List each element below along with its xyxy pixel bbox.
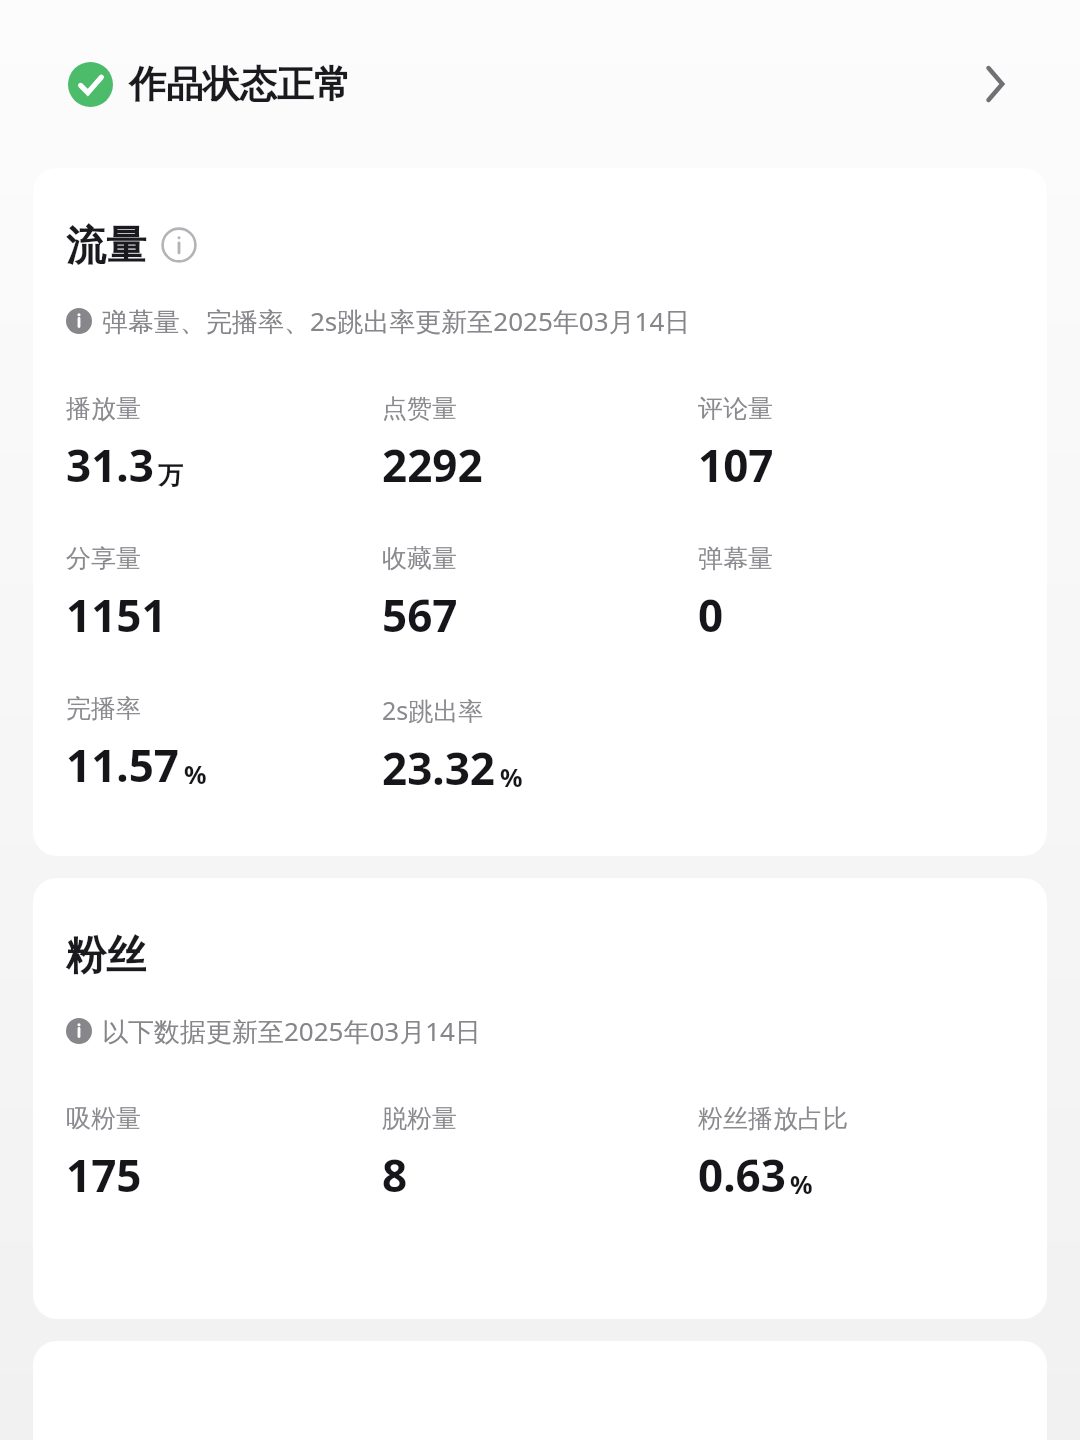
button[interactable]: 流量 [33, 168, 1047, 856]
staticText: 175 [66, 1145, 142, 1205]
staticText: 以下数据更新至2025年03月14日 [102, 1013, 481, 1049]
staticText: 8 [382, 1145, 408, 1205]
staticText: 作品状态正常 [129, 61, 351, 108]
staticText: 弹幕量 [698, 543, 773, 574]
staticText: 播放量 [66, 393, 141, 424]
staticText: 0.63 [698, 1145, 786, 1205]
staticText: 粉丝播放占比 [698, 1103, 848, 1134]
staticText: 11.57 [66, 735, 180, 795]
button[interactable]: 说明 [160, 226, 198, 264]
staticText: 107 [698, 435, 774, 495]
staticText: 2s跳出率 [382, 693, 484, 727]
staticText: % [500, 760, 523, 794]
staticText: 1151 [66, 585, 167, 645]
staticText: 完播率 [66, 693, 141, 724]
button[interactable]: 查看作品状态 [968, 57, 1022, 111]
staticText: 脱粉量 [382, 1103, 457, 1134]
staticText: 万 [158, 460, 183, 491]
staticText: 0 [698, 585, 724, 645]
staticText: 点赞量 [382, 393, 457, 424]
staticText: % [184, 757, 207, 791]
staticText: % [790, 1167, 813, 1201]
staticText: 粉丝 [66, 930, 146, 980]
staticText: 流量 [66, 220, 146, 270]
staticText: 567 [382, 585, 458, 645]
staticText: 收藏量 [382, 543, 457, 574]
button[interactable]: 粉丝 [33, 878, 1047, 1319]
button[interactable]: 作品状态正常 [0, 0, 1080, 168]
staticText: 弹幕量、完播率、2s跳出率更新至2025年03月14日 [102, 303, 691, 339]
staticText: 31.3 [66, 435, 154, 495]
staticText: 2292 [382, 435, 483, 495]
staticText: 吸粉量 [66, 1103, 141, 1134]
staticText: 评论量 [698, 393, 773, 424]
staticText: 23.32 [382, 738, 496, 798]
staticText: 分享量 [66, 543, 141, 574]
